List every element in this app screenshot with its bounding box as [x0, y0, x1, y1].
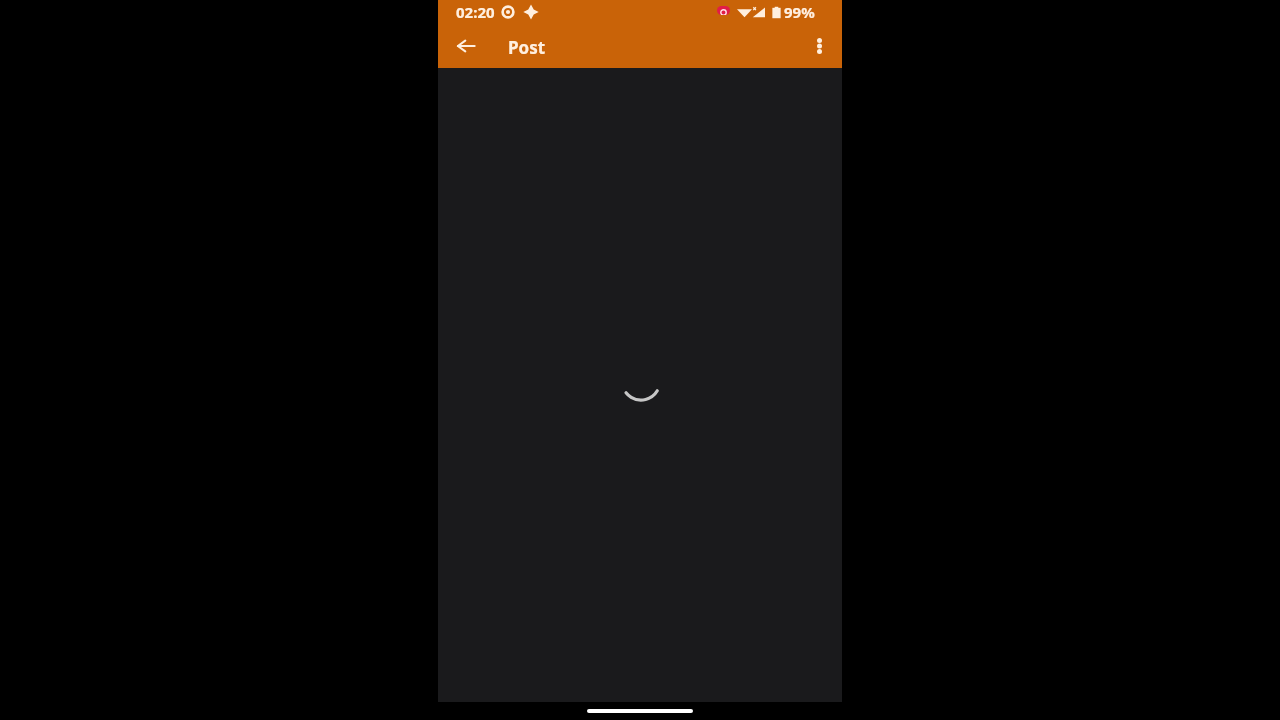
staticText: 02:20	[456, 2, 495, 22]
button[interactable]: Home	[587, 709, 693, 713]
button[interactable]: Back	[438, 26, 494, 68]
staticText: Post	[508, 36, 546, 59]
staticText: 99%	[784, 2, 815, 22]
button[interactable]: More options	[798, 26, 842, 68]
